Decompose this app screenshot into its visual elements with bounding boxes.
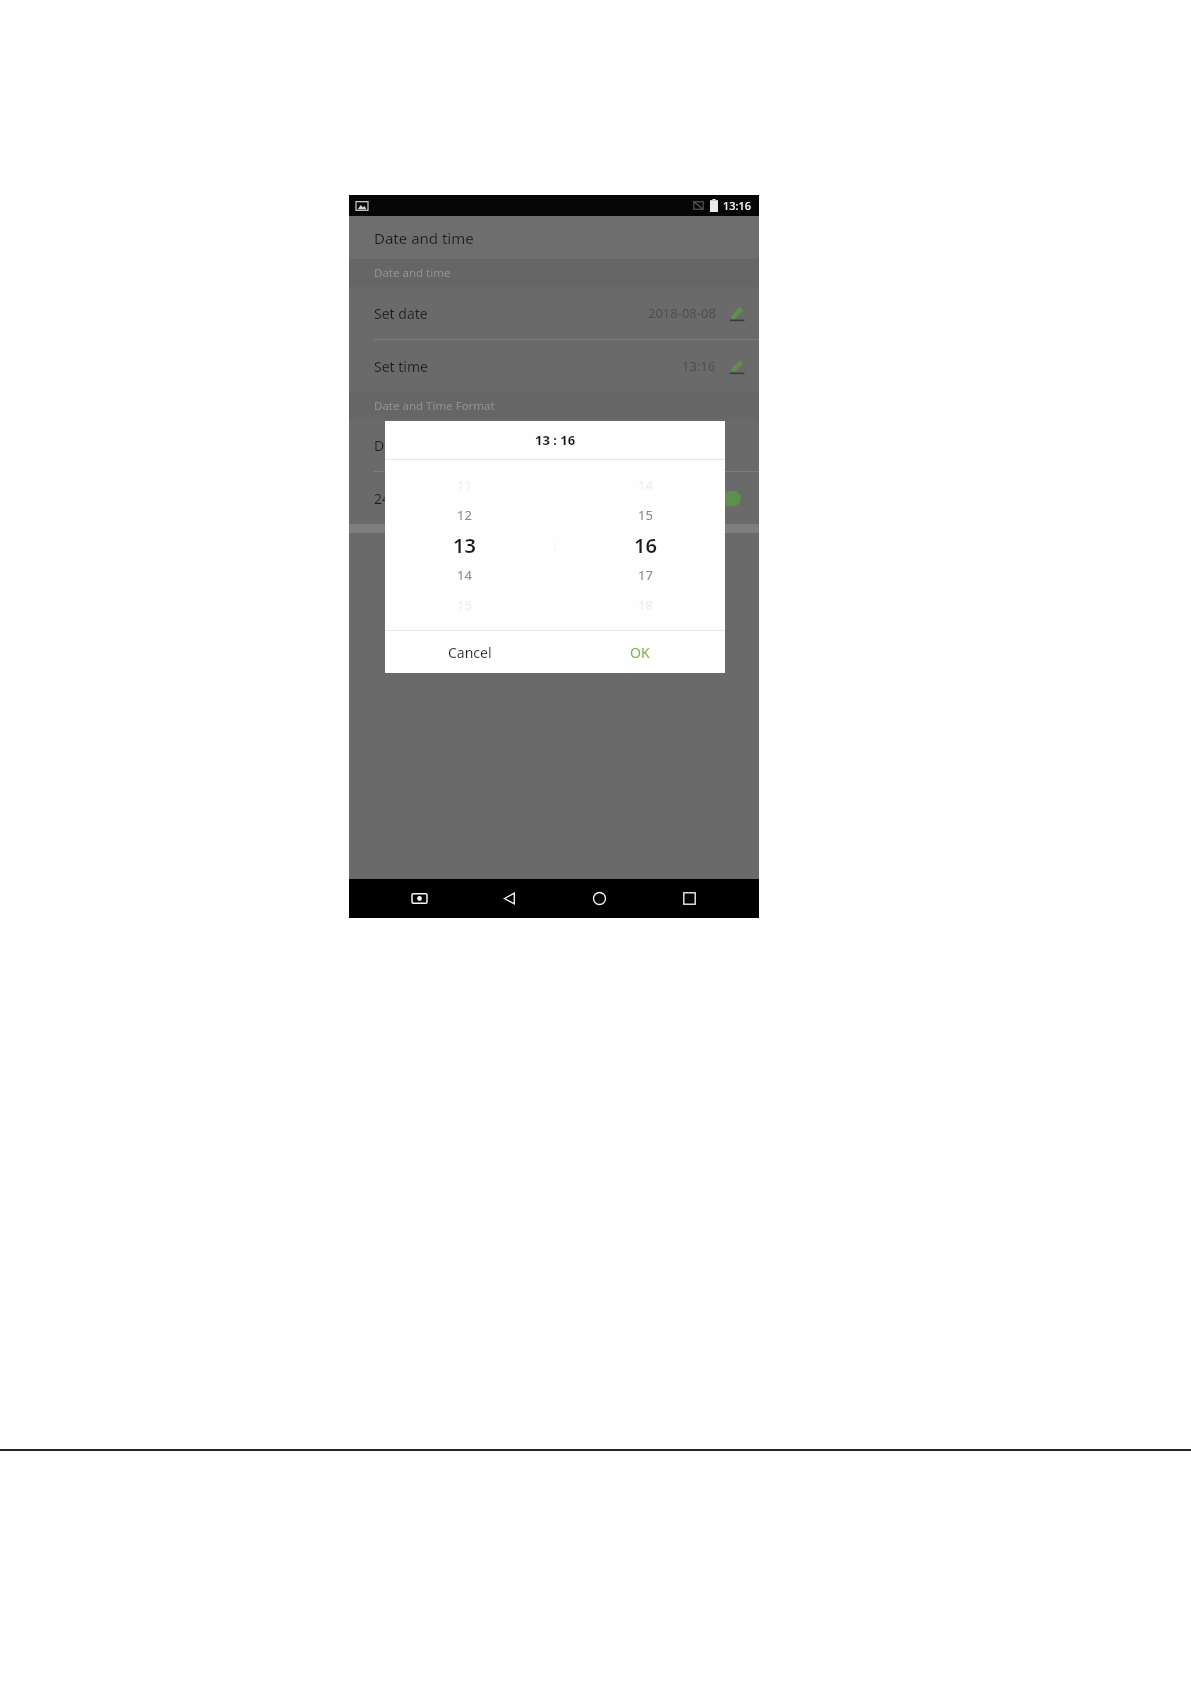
staticText: 13:16 (723, 198, 752, 213)
staticText: Date and time (374, 228, 474, 248)
staticText: 13 (453, 532, 476, 559)
staticText: 17 (638, 566, 653, 584)
staticText: 15 (457, 596, 472, 614)
staticText: 14 (457, 566, 472, 584)
button[interactable]: Home (579, 879, 619, 918)
button[interactable]: Set date (349, 287, 759, 339)
staticText: Date and time (374, 265, 451, 281)
staticText: : (553, 536, 557, 554)
staticText: Date and Time Format (374, 398, 495, 414)
staticText: 13:16 (682, 357, 716, 375)
staticText: OK (630, 643, 650, 662)
button[interactable]: Back (489, 879, 529, 918)
button[interactable]: OK (555, 631, 725, 673)
staticText: Date Format (374, 436, 457, 455)
button[interactable]: Cancel (385, 631, 555, 673)
staticText: 14 (638, 476, 653, 494)
staticText: 24-hour format (374, 489, 475, 508)
button[interactable]: Date Format (349, 419, 759, 471)
staticText: Set time (374, 357, 428, 376)
staticText: 15 (638, 506, 653, 524)
button[interactable]: Set time (349, 340, 759, 392)
staticText: 12 (457, 506, 472, 524)
staticText: 18 (638, 596, 653, 614)
staticText: Cancel (448, 643, 492, 662)
staticText: 13 : 16 (535, 431, 576, 449)
button[interactable]: 24-hour format (349, 472, 759, 524)
staticText: 11 (457, 476, 472, 494)
button[interactable]: Screenshot (399, 879, 439, 918)
staticText: 16 (634, 532, 657, 559)
button[interactable]: Date and time (349, 216, 759, 259)
staticText: Set date (374, 304, 428, 323)
button[interactable]: Recent apps (669, 879, 709, 918)
staticText: 2018-08-08 (648, 304, 716, 322)
